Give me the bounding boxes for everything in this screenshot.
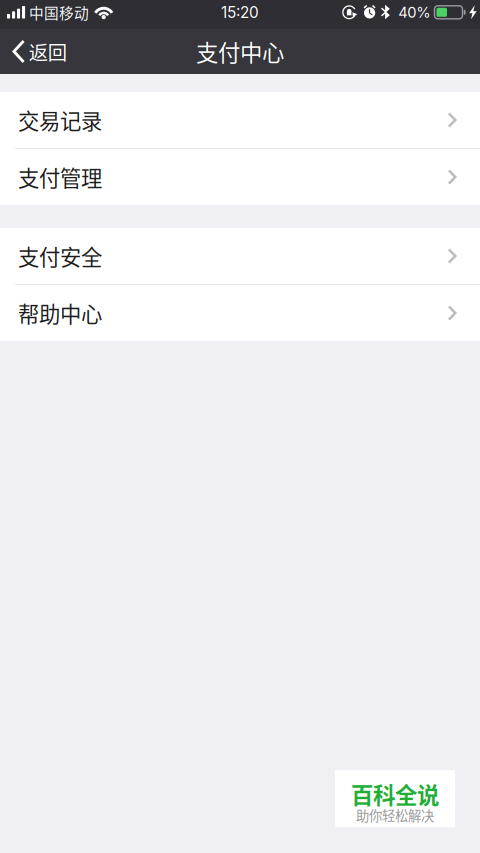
button[interactable]: 返回 — [0, 27, 81, 75]
staticText: 助你轻松解决 — [356, 805, 434, 825]
button[interactable]: 支付管理 — [0, 149, 480, 205]
staticText: 交易记录 — [18, 105, 102, 135]
staticText: 支付安全 — [18, 241, 102, 271]
button[interactable]: 交易记录 — [0, 92, 480, 148]
staticText: 支付中心 — [196, 35, 284, 68]
button[interactable]: 支付安全 — [0, 228, 480, 284]
staticText: 中国移动 — [29, 2, 89, 23]
staticText: 返回 — [29, 37, 67, 65]
staticText: 15:20 — [221, 3, 259, 22]
staticText: 百科全说 — [351, 778, 439, 810]
staticText: 帮助中心 — [18, 298, 102, 328]
staticText: 40% — [398, 3, 430, 21]
staticText: 支付管理 — [18, 162, 102, 192]
button[interactable]: 帮助中心 — [0, 285, 480, 341]
